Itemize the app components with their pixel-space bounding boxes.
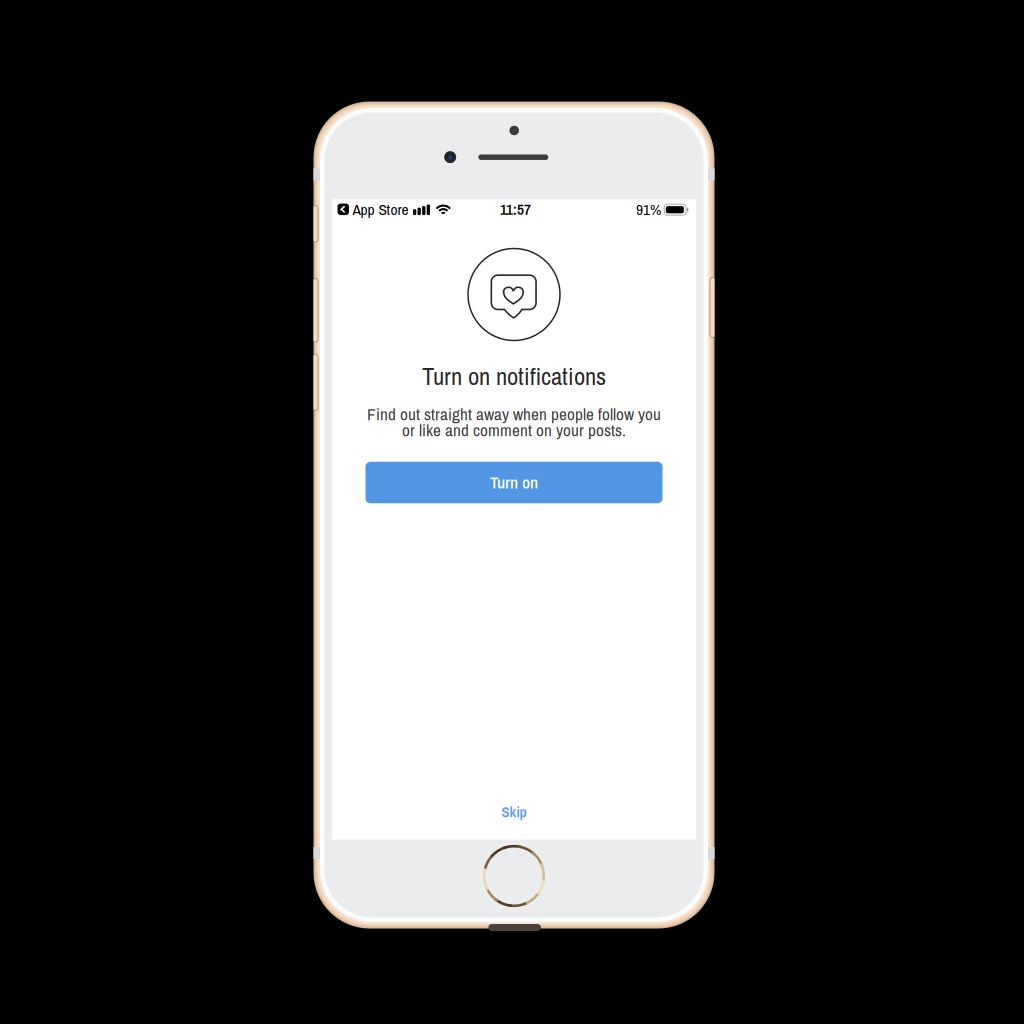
staticText: Turn on notifications [422, 359, 606, 393]
staticText: Skip [501, 802, 526, 822]
staticText: Find out straight away when people follo… [367, 402, 661, 426]
staticText: 91% [636, 199, 661, 220]
staticText: 11:57 [500, 199, 531, 220]
staticText: App Store [352, 199, 408, 220]
button[interactable]: Skip [459, 795, 569, 829]
staticText: or like and comment on your posts. [402, 418, 626, 442]
staticText: Turn on [490, 471, 538, 494]
button[interactable]: Turn on [365, 462, 662, 503]
button[interactable]: Back to App Store [337, 200, 411, 218]
